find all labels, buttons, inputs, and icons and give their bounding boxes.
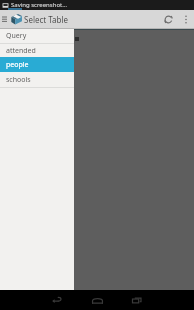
staticText: attended (6, 46, 36, 56)
button[interactable]: Back (42, 290, 72, 310)
staticText: Query (6, 31, 27, 41)
button[interactable]: Refresh (158, 10, 178, 29)
button[interactable]: Query (0, 29, 74, 43)
button[interactable]: App icon (8, 10, 24, 29)
button[interactable]: More options (178, 10, 194, 29)
staticText: schools (6, 75, 31, 85)
staticText: Select Table (24, 14, 69, 25)
button[interactable]: people (0, 57, 74, 72)
button[interactable]: Home (82, 290, 112, 310)
button[interactable]: Navigation drawer (0, 10, 8, 29)
button[interactable]: schools (0, 72, 74, 87)
button[interactable]: attended (0, 44, 74, 57)
staticText: Saving screenshot… (11, 1, 67, 9)
button[interactable]: Recent apps (122, 290, 152, 310)
staticText: people (6, 60, 29, 70)
